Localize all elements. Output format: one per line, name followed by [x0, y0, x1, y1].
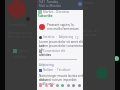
button[interactable]: Reaction [67, 84, 70, 87]
staticText: Sectetur · Adipiscing [43, 35, 74, 39]
staticText: 9:41 Tuesday [39, 0, 59, 4]
staticText: Praesent sapien, lo- [47, 23, 75, 27]
staticText: Lorem ipsum dolor sit amet elit sed [39, 40, 85, 48]
staticText: dictumst rutrum imperdiet mollis arcu [39, 78, 85, 86]
staticText: Mail to Miranda [39, 4, 62, 8]
staticText: Subscribe [38, 14, 53, 18]
button[interactable]: Reaction [72, 84, 75, 87]
staticText: rem mollis fermentum [47, 27, 79, 31]
button[interactable]: Reaction [78, 84, 81, 87]
staticText: 12 · [75, 36, 81, 40]
staticText: Market – Overview [43, 10, 70, 14]
staticText: Lorem ipsum dolor consectetur elit [39, 44, 85, 52]
staticText: ultricies [39, 53, 52, 57]
staticText: Nullam · Tincidunt [43, 68, 71, 72]
button[interactable]: Reaction [61, 84, 64, 87]
staticText: Adipiscing [39, 63, 54, 67]
staticText: Nam integer mauris lacinia sed nisl ut [39, 74, 85, 82]
staticText: Lorem [84, 1, 94, 5]
button[interactable]: Send [114, 56, 119, 61]
button[interactable]: Market – Overview [38, 10, 70, 14]
button[interactable]: Reaction [45, 84, 48, 87]
staticText: Consectetur elit [43, 49, 66, 53]
button[interactable]: Reaction [39, 84, 42, 87]
button[interactable]: Reaction [56, 84, 59, 87]
button[interactable]: Reaction [50, 84, 53, 87]
